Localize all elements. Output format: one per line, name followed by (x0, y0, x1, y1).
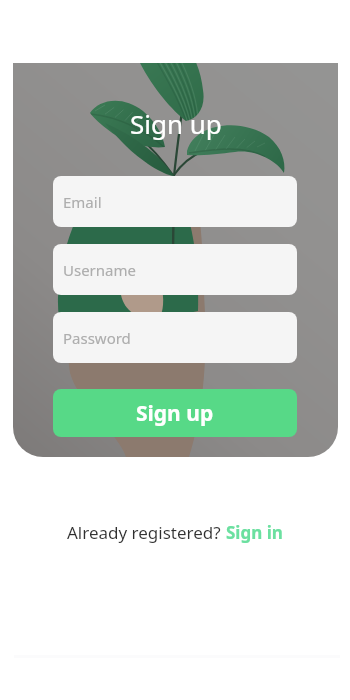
button[interactable]: Sign up (53, 389, 297, 437)
staticText: Email (63, 192, 102, 212)
button[interactable]: Sign in (226, 521, 283, 544)
button[interactable]: Email (53, 176, 297, 227)
staticText: Sign up (136, 399, 214, 428)
staticText: Sign up (130, 106, 222, 141)
button[interactable]: Password (53, 312, 297, 363)
staticText: Username (63, 260, 136, 280)
staticText: Already registered? (67, 521, 226, 544)
staticText: Password (63, 328, 131, 348)
button[interactable]: Username (53, 244, 297, 295)
